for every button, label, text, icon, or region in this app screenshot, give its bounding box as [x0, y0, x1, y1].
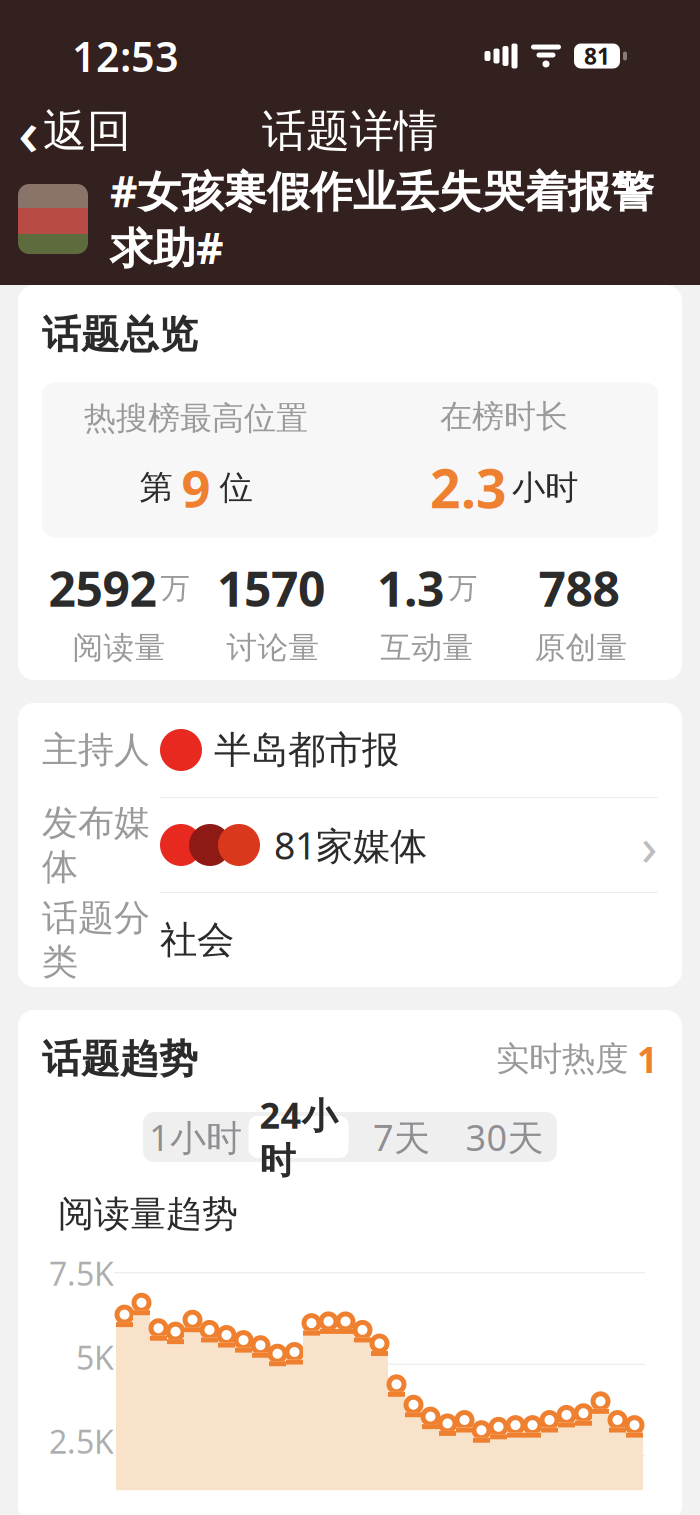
staticText: 1570: [217, 556, 325, 620]
staticText: 实时热度: [496, 1038, 628, 1079]
staticText: 30天: [465, 1113, 543, 1161]
button[interactable]: 30天: [453, 1112, 556, 1162]
staticText: 话题总览: [42, 311, 198, 358]
staticText: 1小时: [149, 1113, 242, 1161]
button[interactable]: 发布媒体: [42, 798, 658, 892]
staticText: 9: [181, 454, 210, 521]
staticText: 主持人: [42, 728, 150, 772]
staticText: 万: [448, 570, 477, 606]
button[interactable]: 1小时: [144, 1112, 247, 1162]
staticText: 话题详情: [262, 104, 438, 158]
staticText: 返回: [43, 104, 131, 158]
staticText: 互动量: [380, 629, 473, 667]
staticText: ‹: [18, 88, 39, 173]
staticText: 讨论量: [226, 629, 319, 667]
staticText: #女孩寒假作业丢失哭着报警求助#: [110, 162, 654, 276]
staticText: 话题分类: [42, 896, 150, 984]
staticText: 7.5K: [49, 1252, 114, 1294]
staticText: 788: [538, 556, 619, 620]
staticText: 12:53: [72, 29, 179, 83]
button[interactable]: ‹: [18, 100, 168, 162]
staticText: 热搜榜最高位置: [84, 399, 308, 438]
staticText: ›: [641, 810, 658, 880]
staticText: 原创量: [534, 629, 627, 667]
staticText: 小时: [512, 467, 578, 508]
staticText: 7天: [373, 1113, 430, 1161]
staticText: 24小时: [259, 1091, 337, 1183]
staticText: 2.5K: [49, 1420, 114, 1462]
staticText: 社会: [160, 917, 234, 963]
staticText: 2.3: [430, 452, 507, 523]
staticText: 1.3: [377, 556, 444, 620]
staticText: 在榜时长: [440, 397, 568, 436]
staticText: 5K: [76, 1336, 114, 1378]
staticText: 位: [219, 467, 252, 508]
staticText: 81: [584, 41, 610, 71]
staticText: 2592: [48, 556, 156, 620]
staticText: 发布媒体: [42, 801, 150, 889]
button[interactable]: 7天: [350, 1112, 453, 1162]
staticText: 1: [637, 1035, 658, 1083]
staticText: 81家媒体: [274, 820, 427, 870]
staticText: 阅读量: [72, 629, 165, 667]
staticText: 话题趋势: [42, 1035, 198, 1083]
staticText: 万: [160, 570, 189, 606]
staticText: 半岛都市报: [214, 727, 399, 773]
button[interactable]: 24小时: [247, 1112, 350, 1162]
staticText: 阅读量趋势: [58, 1192, 238, 1236]
staticText: 第: [139, 467, 172, 508]
